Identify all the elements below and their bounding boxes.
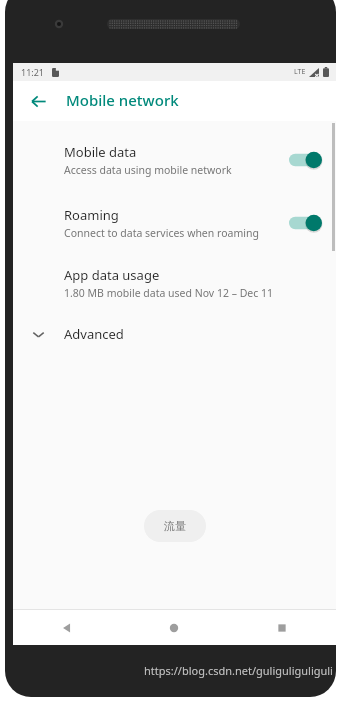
button[interactable]: Home [120, 610, 228, 645]
staticText: LTE [294, 67, 306, 77]
button[interactable]: Back [13, 610, 120, 645]
staticText: 11:21 [21, 66, 45, 78]
button[interactable]: App data usage [13, 254, 336, 312]
button[interactable]: Roaming [13, 191, 336, 254]
button[interactable]: Recents [228, 610, 336, 645]
staticText: https://blog.csdn.net/guliguliguliguli [144, 663, 333, 678]
staticText: Mobile data [64, 143, 137, 161]
button[interactable]: Back [21, 84, 55, 118]
staticText: Roaming [64, 206, 119, 224]
button[interactable]: Advanced [13, 312, 336, 356]
staticText: 流量 [164, 519, 186, 533]
button[interactable]: Mobile data [13, 128, 336, 191]
staticText: App data usage [64, 266, 160, 284]
button[interactable]: Toggle [289, 150, 322, 170]
staticText: Mobile network [66, 90, 179, 110]
button[interactable]: 流量 [144, 510, 206, 542]
staticText: Connect to data services when roaming [64, 226, 259, 240]
button[interactable]: Toggle [289, 213, 322, 233]
staticText: 1.80 MB mobile data used Nov 12 – Dec 11 [64, 286, 274, 300]
staticText: Access data using mobile network [64, 163, 232, 177]
staticText: Advanced [64, 325, 124, 343]
